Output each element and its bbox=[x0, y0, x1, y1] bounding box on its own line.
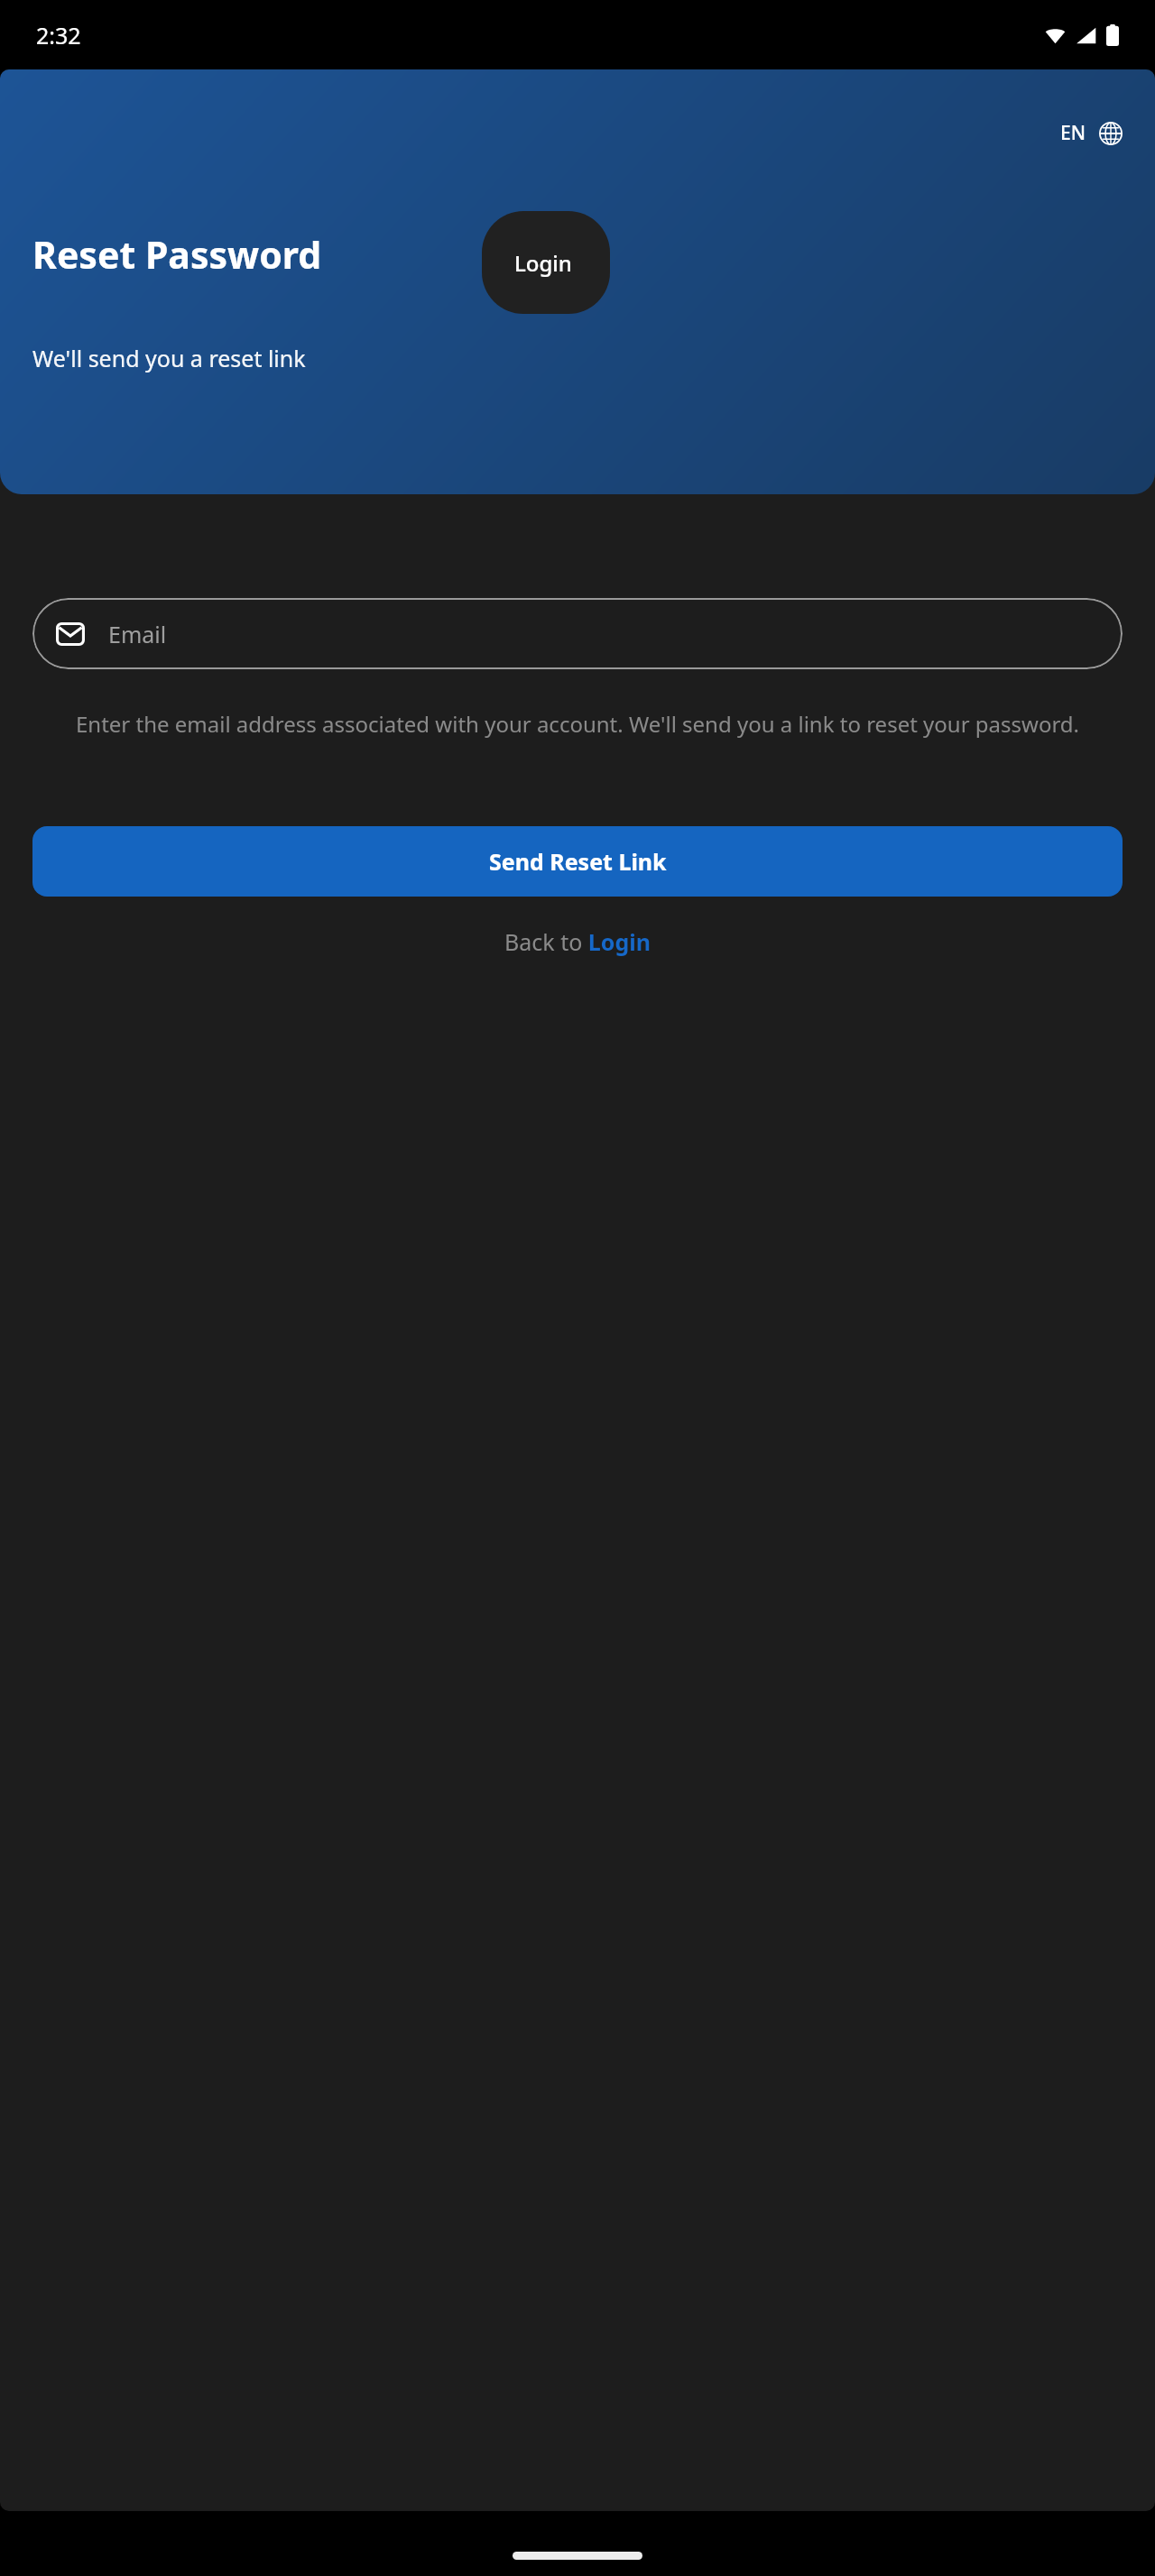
staticText: We'll send you a reset link bbox=[32, 343, 306, 373]
button[interactable]: Login bbox=[482, 211, 610, 314]
staticText: Login bbox=[514, 248, 572, 278]
staticText: Send Reset Link bbox=[489, 846, 667, 877]
staticText: Email bbox=[108, 619, 167, 649]
other: Change language bbox=[1099, 122, 1123, 145]
button[interactable]: Email bbox=[32, 598, 1123, 669]
staticText: 2:32 bbox=[36, 20, 81, 51]
staticText: Back to Login bbox=[504, 926, 651, 957]
button[interactable]: Send Reset Link bbox=[32, 826, 1123, 897]
staticText: Enter the email address associated with … bbox=[40, 709, 1115, 739]
button[interactable]: EN bbox=[1053, 115, 1130, 152]
staticText: Reset Password bbox=[32, 229, 322, 280]
staticText: EN bbox=[1060, 120, 1086, 146]
button[interactable]: Back to Login bbox=[494, 919, 661, 964]
